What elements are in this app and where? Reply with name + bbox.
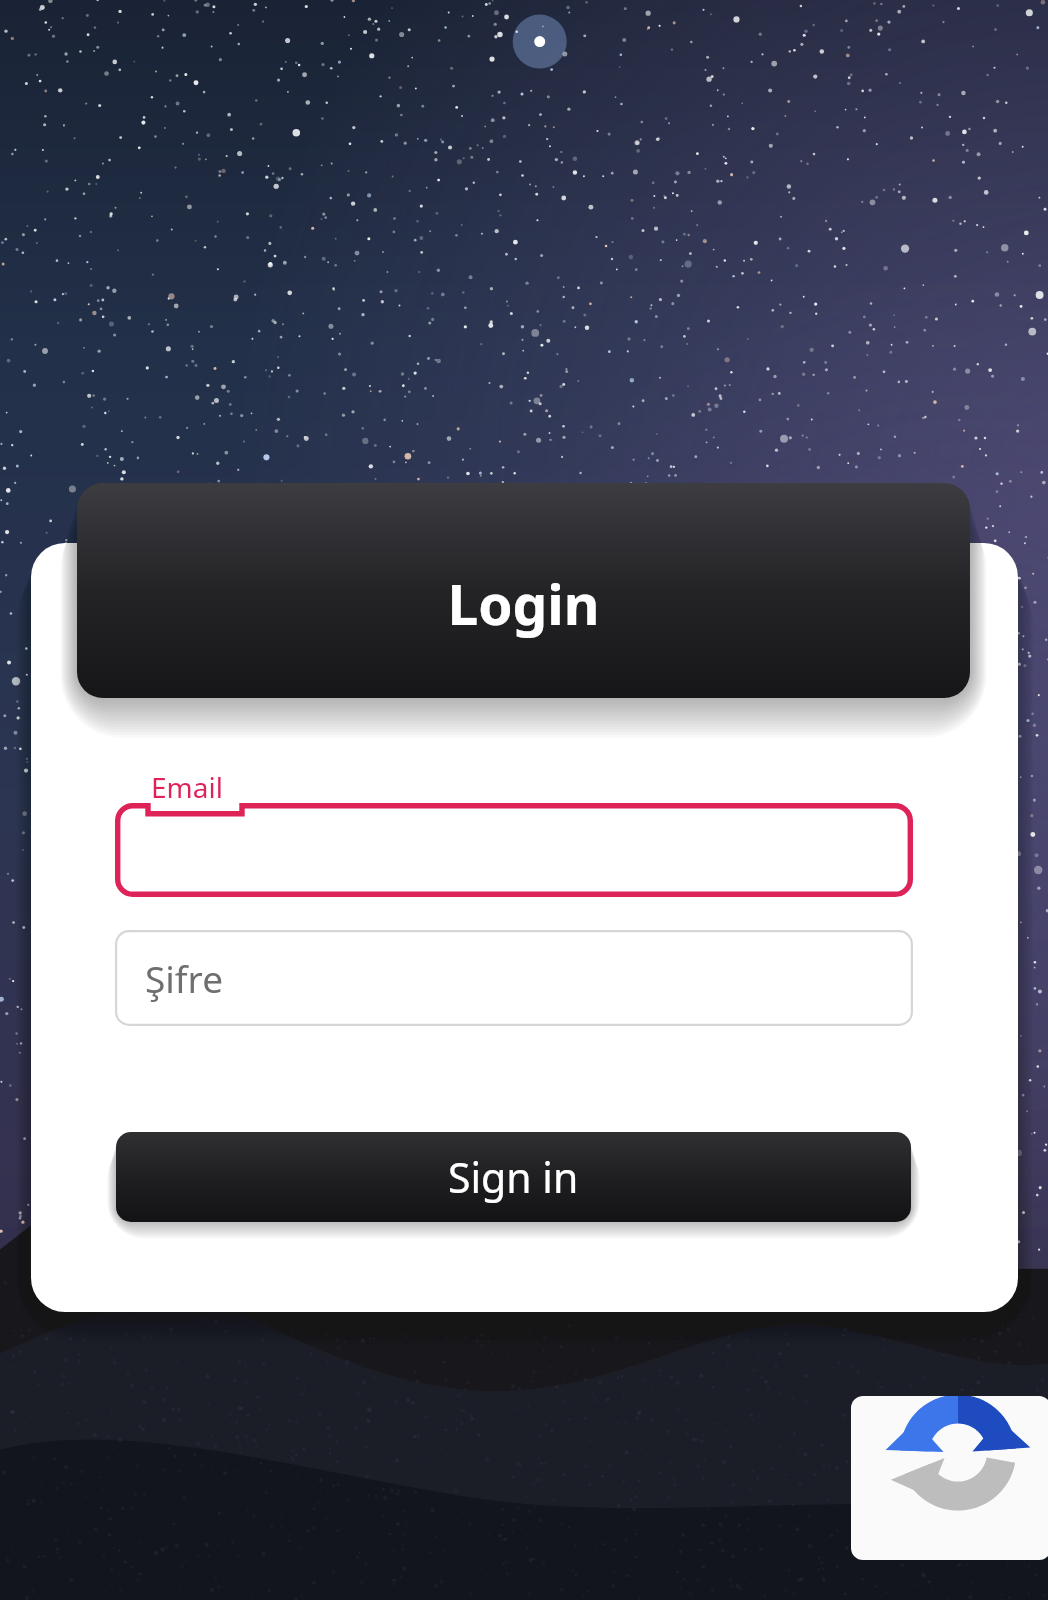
button[interactable]: Şifre — [115, 930, 913, 1026]
staticText: Sign in — [448, 1149, 579, 1205]
button[interactable]: Sync — [851, 1396, 1048, 1560]
staticText: Şifre — [145, 953, 223, 1003]
staticText: Login — [447, 566, 600, 638]
button[interactable]: Email — [115, 803, 913, 897]
button[interactable]: Sign in — [116, 1132, 911, 1222]
staticText: Email — [151, 768, 223, 806]
